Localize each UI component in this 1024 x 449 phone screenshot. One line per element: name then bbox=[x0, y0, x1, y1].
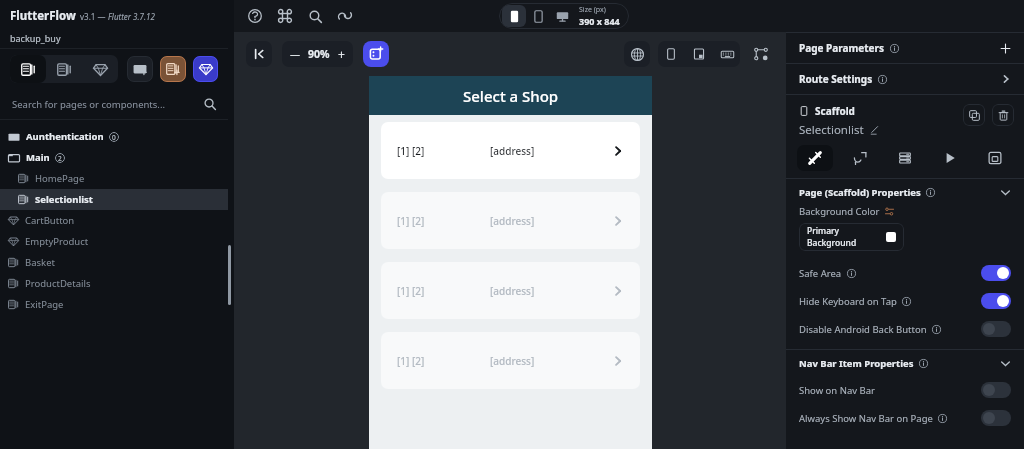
button[interactable]: ProductDetails bbox=[8, 273, 228, 294]
button[interactable]: [1] [2] bbox=[397, 122, 624, 179]
staticText: + bbox=[338, 46, 345, 62]
button[interactable]: Hide Keyboard on Tap bbox=[799, 287, 1011, 315]
button[interactable]: State bbox=[977, 145, 1013, 171]
staticText: [address] bbox=[490, 144, 535, 158]
button[interactable]: CartButton bbox=[8, 210, 228, 231]
staticText: Selectionlist bbox=[799, 122, 864, 138]
button[interactable]: Layout preview bbox=[690, 45, 708, 63]
staticText: Background bbox=[807, 237, 857, 249]
staticText: — bbox=[290, 47, 300, 61]
staticText: [address] bbox=[490, 214, 535, 228]
staticText: Selectionlist bbox=[35, 193, 93, 206]
button[interactable]: Backend bbox=[887, 145, 923, 171]
button[interactable]: Actions bbox=[842, 145, 878, 171]
button[interactable]: Desktop bbox=[550, 5, 574, 27]
staticText: Scaffold bbox=[815, 104, 855, 118]
button[interactable]: Aunthentication bbox=[8, 126, 228, 147]
button[interactable]: Route Settings bbox=[799, 64, 1011, 94]
staticText: Aunthentication bbox=[26, 130, 104, 143]
staticText: ExitPage bbox=[25, 298, 64, 311]
button[interactable]: Disable Android Back Button bbox=[799, 315, 1011, 343]
button[interactable]: Search bbox=[306, 7, 324, 25]
staticText: Select a Shop bbox=[463, 86, 559, 106]
button[interactable]: ExitPage bbox=[8, 294, 228, 315]
button[interactable]: EmptyProduct bbox=[8, 231, 228, 252]
button[interactable]: Primary bbox=[807, 223, 896, 251]
staticText: Page Parameters bbox=[799, 41, 885, 55]
staticText: FlutterFlow bbox=[10, 8, 76, 24]
button[interactable]: Widget tree tools bbox=[748, 41, 774, 67]
button[interactable]: Link bbox=[336, 7, 354, 25]
staticText: 0 bbox=[112, 133, 116, 142]
button[interactable]: New gem bbox=[193, 56, 218, 82]
staticText: v3.1 — bbox=[80, 11, 108, 22]
button[interactable]: [1] [2] bbox=[397, 262, 624, 319]
button[interactable]: Page Parameters bbox=[799, 33, 1011, 63]
button[interactable]: Tablet bbox=[526, 5, 550, 27]
staticText: Main bbox=[26, 151, 50, 164]
staticText: [address] bbox=[490, 354, 535, 368]
staticText: Page (Scaffold) Properties bbox=[799, 186, 921, 199]
staticText: 90% bbox=[308, 47, 330, 61]
button[interactable]: HomePage bbox=[18, 168, 228, 189]
button[interactable]: Always Show Nav Bar on Page bbox=[799, 404, 1011, 432]
staticText: Search for pages or components... bbox=[12, 98, 165, 111]
button[interactable]: Properties bbox=[797, 145, 833, 171]
staticText: Basket bbox=[25, 256, 55, 269]
button[interactable]: Rename bbox=[870, 125, 880, 135]
staticText: Flutter 3.7.12 bbox=[108, 11, 155, 22]
staticText: HomePage bbox=[35, 172, 85, 185]
staticText: Background Color bbox=[799, 205, 880, 218]
button[interactable]: [1] [2] bbox=[397, 332, 624, 389]
staticText: Size (px) bbox=[579, 5, 606, 15]
staticText: EmptyProduct bbox=[25, 235, 89, 248]
staticText: Disable Android Back Button bbox=[799, 323, 927, 336]
button[interactable]: Page (Scaffold) Properties bbox=[799, 179, 1011, 205]
button[interactable]: Selectionlist bbox=[18, 189, 228, 210]
staticText: [1] [2] bbox=[397, 284, 425, 298]
staticText: [address] bbox=[490, 284, 535, 298]
staticText: Primary bbox=[807, 225, 840, 237]
button[interactable]: New component bbox=[160, 56, 186, 82]
staticText: Hide Keyboard on Tap bbox=[799, 295, 897, 308]
button[interactable]: Shortcuts bbox=[276, 7, 294, 25]
button[interactable]: Help bbox=[246, 7, 264, 25]
button[interactable] bbox=[82, 55, 118, 83]
button[interactable]: Nav Bar Item Properties bbox=[799, 350, 1011, 376]
button[interactable]: Collapse bbox=[246, 41, 272, 67]
button[interactable]: Zoom in bbox=[338, 46, 345, 62]
button[interactable] bbox=[46, 55, 82, 83]
button[interactable]: Basket bbox=[8, 252, 228, 273]
staticText: Safe Area bbox=[799, 267, 842, 280]
button[interactable] bbox=[10, 55, 46, 83]
button[interactable]: Show on Nav Bar bbox=[799, 376, 1011, 404]
staticText: 2 bbox=[58, 154, 62, 163]
staticText: 390 x 844 bbox=[579, 15, 620, 27]
staticText: Route Settings bbox=[799, 72, 873, 86]
button[interactable]: Animations bbox=[932, 145, 968, 171]
button[interactable]: Phone bbox=[502, 5, 526, 27]
staticText: ProductDetails bbox=[25, 277, 91, 290]
button[interactable]: [1] [2] bbox=[397, 192, 624, 249]
staticText: Always Show Nav Bar on Page bbox=[799, 412, 933, 425]
button[interactable]: Localization bbox=[624, 41, 650, 67]
staticText: Nav Bar Item Properties bbox=[799, 357, 914, 370]
button[interactable]: Zoom out bbox=[290, 47, 300, 61]
staticText: CartButton bbox=[25, 214, 75, 227]
button[interactable]: Add widget bbox=[363, 41, 389, 67]
button[interactable]: Keyboard bbox=[718, 45, 736, 63]
button[interactable]: Delete bbox=[992, 104, 1014, 126]
button[interactable]: Mobile preview bbox=[662, 45, 680, 63]
staticText: Show on Nav Bar bbox=[799, 384, 875, 397]
button[interactable]: Main bbox=[8, 147, 228, 168]
button[interactable]: Safe Area bbox=[799, 259, 1011, 287]
staticText: [1] [2] bbox=[397, 354, 425, 368]
staticText: backup_buy bbox=[10, 32, 61, 44]
staticText: [1] [2] bbox=[397, 214, 425, 228]
button[interactable]: Duplicate bbox=[963, 104, 985, 126]
staticText: [1] [2] bbox=[397, 144, 425, 158]
button[interactable]: New folder bbox=[127, 56, 153, 82]
